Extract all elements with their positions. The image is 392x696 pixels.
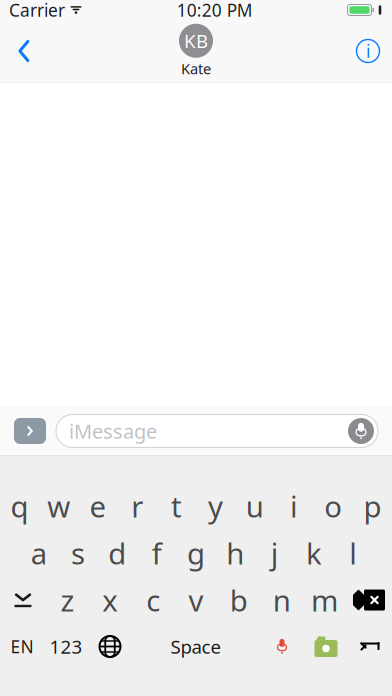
button[interactable]: u [235,482,274,529]
button[interactable]: i [274,482,314,529]
button[interactable]: g [176,529,216,576]
button[interactable]: Delete [346,576,392,623]
staticText: g [187,533,205,572]
button[interactable]: j [255,529,294,576]
button[interactable]: v [175,576,217,623]
staticText: o [324,486,342,525]
staticText: f [152,533,162,572]
staticText: c [146,580,160,619]
staticText: Space [170,634,221,659]
button[interactable]: q [0,482,39,529]
staticText: q [11,486,29,525]
staticText: i [290,486,298,525]
staticText: EN [10,635,33,658]
button[interactable]: b [217,576,260,623]
staticText: b [230,580,248,619]
button[interactable]: Next keyboard [88,623,132,669]
button[interactable]: Dictate [260,623,304,669]
staticText: KB [184,28,208,53]
staticText: j [271,533,279,572]
button[interactable]: w [39,482,78,529]
staticText: 10:20 PM [177,0,253,21]
button[interactable]: m [303,576,346,623]
button[interactable]: Details [346,29,390,73]
staticText: 123 [49,634,82,659]
button[interactable]: x [89,576,132,623]
staticText: u [246,486,264,525]
staticText: Carrier [9,0,65,21]
button[interactable]: Camera [304,623,348,669]
staticText: p [363,486,381,525]
button[interactable]: n [260,576,303,623]
staticText: w [47,486,70,525]
staticText: n [273,580,291,619]
button[interactable]: y [196,482,235,529]
button[interactable]: l [334,529,373,576]
button[interactable]: a [19,529,58,576]
button[interactable]: c [132,576,175,623]
button[interactable]: 123 [44,623,88,669]
button[interactable]: r [118,482,157,529]
staticText: a [31,533,47,572]
staticText: l [349,533,357,572]
staticText: Kate [181,59,211,78]
staticText: i [366,39,370,62]
button[interactable]: Back [2,29,46,73]
button[interactable]: Return [348,623,392,669]
button[interactable]: Shift [0,576,46,623]
button[interactable]: EN [0,623,44,669]
button[interactable]: f [137,529,176,576]
button[interactable]: o [314,482,353,529]
staticText: s [71,533,85,572]
button[interactable]: t [157,482,196,529]
button[interactable]: p [353,482,392,529]
staticText: d [108,533,126,572]
staticText: z [60,580,74,619]
staticText: x [102,580,118,619]
button[interactable]: More [14,418,46,444]
button[interactable]: d [98,529,137,576]
staticText: m [311,580,338,619]
button[interactable]: s [58,529,98,576]
button[interactable]: z [46,576,89,623]
staticText: r [131,486,143,525]
staticText: y [208,486,223,525]
button[interactable]: h [216,529,255,576]
staticText: k [306,533,322,572]
button[interactable]: k [294,529,334,576]
staticText: e [89,486,106,525]
staticText: t [171,486,182,525]
button[interactable]: Space [132,623,260,669]
staticText: h [226,533,244,572]
button[interactable]: e [78,482,118,529]
staticText: v [188,580,203,619]
staticText: iMessage [69,418,157,444]
button[interactable]: Dictate [348,418,374,444]
